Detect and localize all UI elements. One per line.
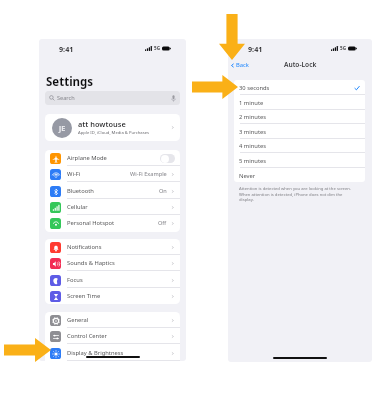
- staticText: 3 minutes: [239, 128, 267, 136]
- other: Pointer to Display and Brightness: [4, 338, 51, 362]
- staticText: Never: [239, 172, 256, 180]
- staticText: Back: [236, 61, 249, 69]
- staticText: 5G: [154, 45, 160, 51]
- button[interactable]: Control Center: [45, 328, 180, 344]
- button[interactable]: 30 seconds: [234, 80, 365, 95]
- staticText: Bluetooth: [67, 187, 94, 195]
- button[interactable]: Notifications: [45, 239, 180, 255]
- staticText: Control Center: [67, 332, 107, 340]
- staticText: att howtouse: [78, 119, 126, 129]
- staticText: Wi-Fi: [67, 170, 81, 178]
- staticText: General: [67, 316, 89, 324]
- staticText: 30 seconds: [239, 84, 270, 92]
- staticText: Auto-Lock: [284, 60, 317, 69]
- staticText: Display & Brightness: [67, 349, 124, 357]
- staticText: Apple ID, iCloud, Media & Purchases: [78, 130, 150, 136]
- staticText: Search: [57, 94, 75, 102]
- staticText: JE: [59, 123, 66, 133]
- staticText: Personal Hotspot: [67, 219, 115, 227]
- button[interactable]: JE: [45, 114, 180, 141]
- staticText: 5 minutes: [239, 157, 267, 165]
- button[interactable]: Personal Hotspot: [45, 215, 180, 231]
- other: Pointer to 30 seconds: [192, 75, 238, 99]
- button[interactable]: 5 minutes: [234, 153, 365, 168]
- button[interactable]: Wi-Fi: [45, 166, 180, 182]
- button[interactable]: Airplane Mode: [45, 150, 180, 166]
- staticText: On: [159, 187, 167, 195]
- staticText: Wi-Fi Example: [130, 170, 167, 178]
- button[interactable]: Focus: [45, 272, 180, 288]
- button[interactable]: General: [45, 312, 180, 328]
- staticText: Notifications: [67, 243, 102, 251]
- button[interactable]: Search: [45, 91, 180, 105]
- button[interactable]: Display & Brightness: [45, 345, 180, 361]
- staticText: Screen Time: [67, 292, 101, 300]
- staticText: Airplane Mode: [67, 154, 107, 162]
- button[interactable]: Bluetooth: [45, 183, 180, 199]
- other: Pointer down to Auto-Lock screen: [219, 14, 245, 60]
- button[interactable]: 1 minute: [234, 95, 365, 110]
- staticText: Sounds & Haptics: [67, 259, 115, 267]
- staticText: 1 minute: [239, 99, 264, 107]
- button[interactable]: Never: [234, 168, 365, 182]
- staticText: Cellular: [67, 203, 88, 211]
- button[interactable]: 3 minutes: [234, 124, 365, 139]
- staticText: Focus: [67, 276, 83, 284]
- staticText: 4 minutes: [239, 142, 267, 150]
- button[interactable]: 4 minutes: [234, 138, 365, 153]
- staticText: Off: [158, 219, 167, 227]
- staticText: 2 minutes: [239, 113, 267, 121]
- button[interactable]: Back: [228, 59, 254, 71]
- button[interactable]: Screen Time: [45, 288, 180, 304]
- button[interactable]: Cellular: [45, 199, 180, 215]
- staticText: Attention is detected when you are looki…: [239, 186, 356, 202]
- button[interactable]: 2 minutes: [234, 109, 365, 124]
- staticText: 9:41: [59, 44, 74, 54]
- staticText: Settings: [46, 74, 94, 90]
- button[interactable]: Sounds & Haptics: [45, 255, 180, 271]
- staticText: 5G: [340, 45, 346, 51]
- staticText: 9:41: [248, 44, 263, 54]
